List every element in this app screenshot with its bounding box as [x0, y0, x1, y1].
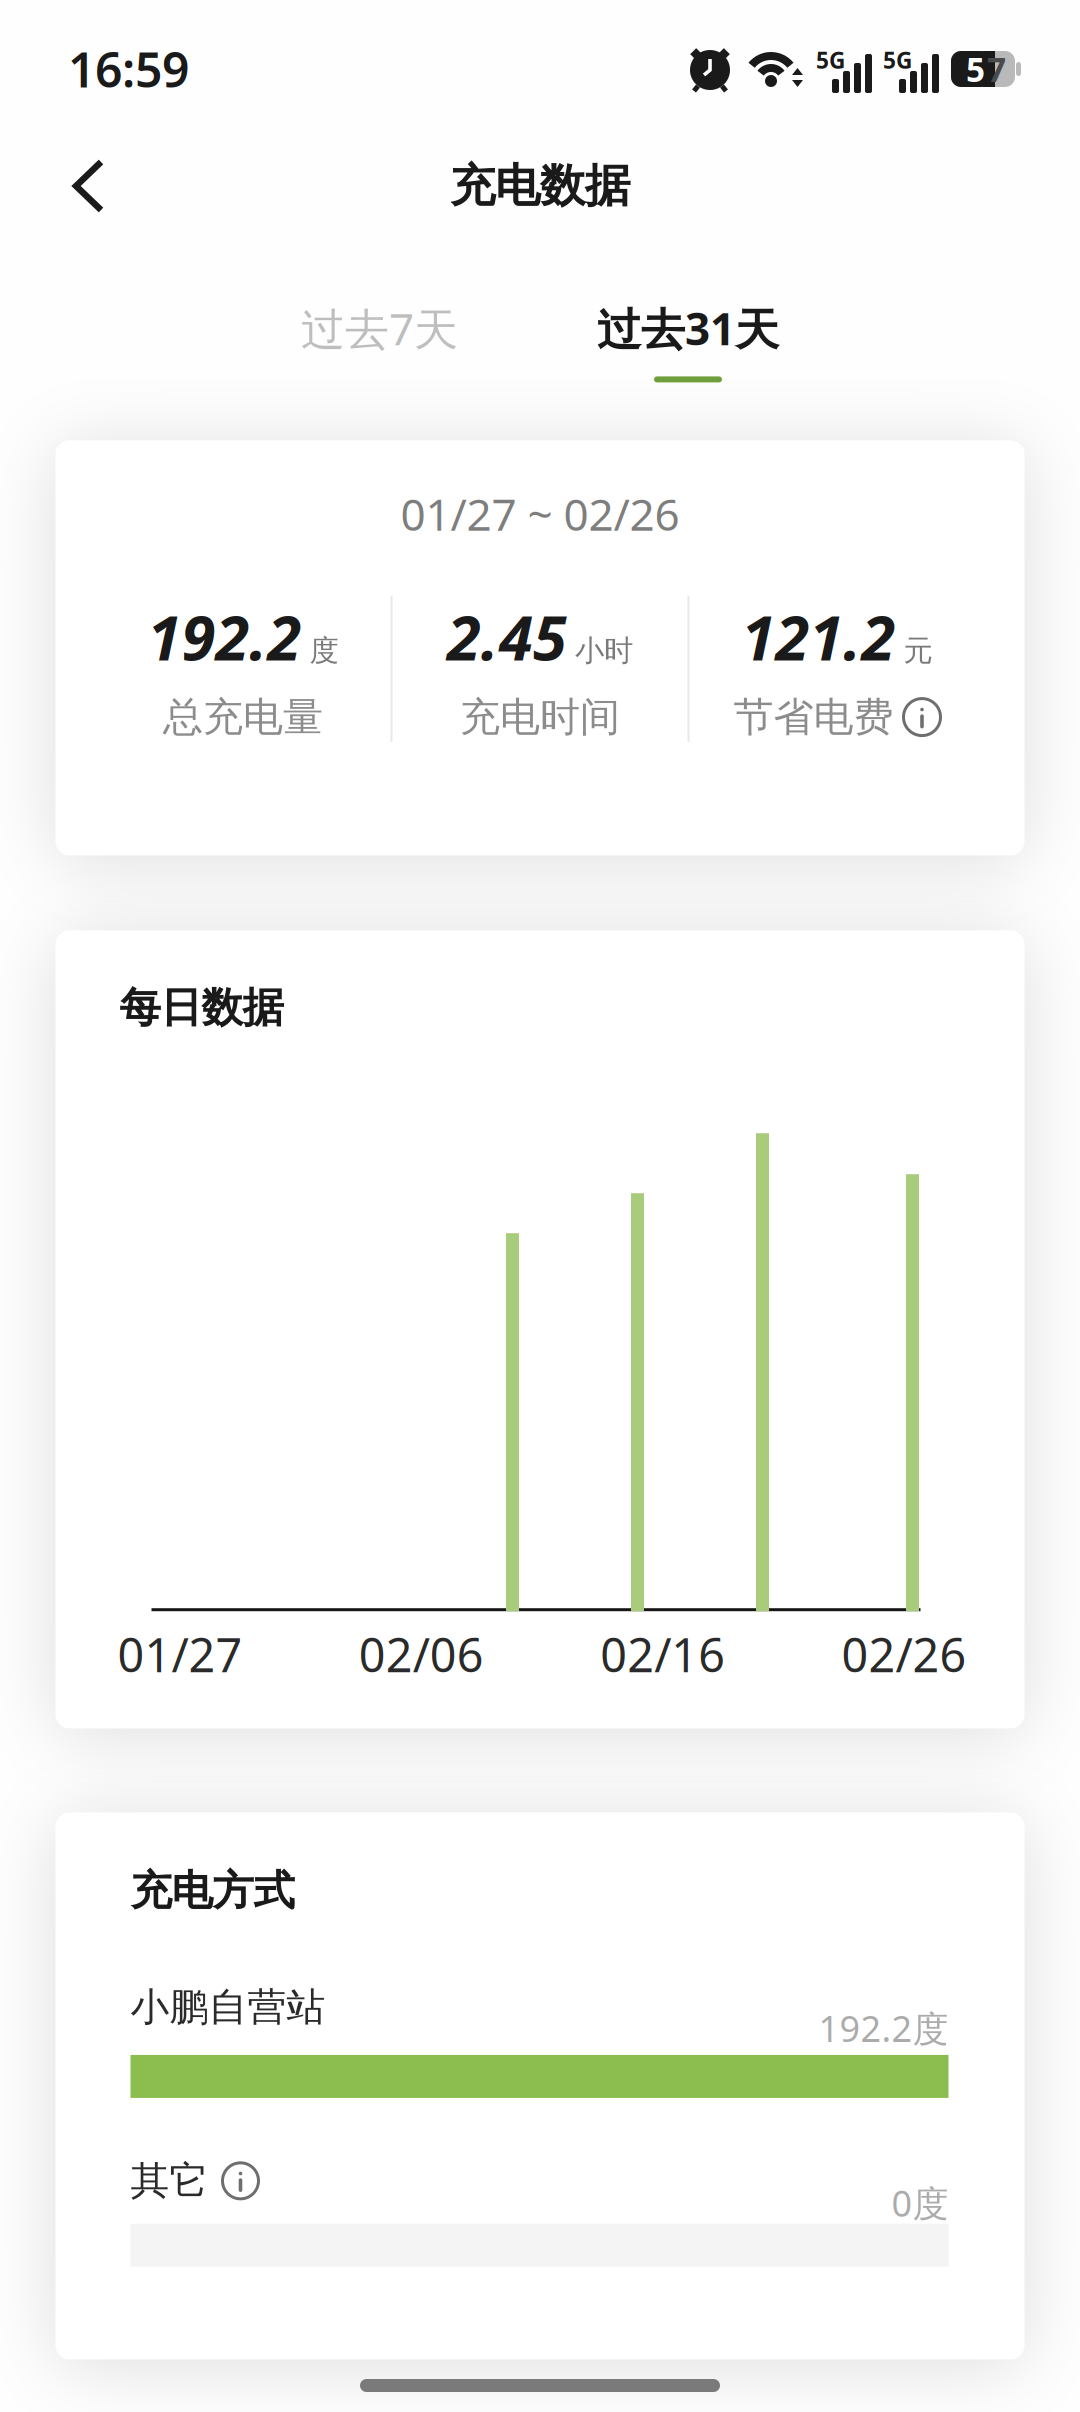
- staticText: 5G: [816, 45, 845, 75]
- button[interactable]: [222, 2163, 258, 2199]
- staticText: 元: [903, 633, 932, 669]
- button[interactable]: 过去7天: [301, 299, 458, 357]
- staticText: 充电数据: [450, 158, 630, 214]
- button[interactable]: 过去31天: [597, 299, 779, 382]
- staticText: 7: [987, 47, 1006, 91]
- staticText: 02/16: [600, 1623, 725, 1685]
- staticText: 小鹏自营站: [130, 1983, 325, 2031]
- staticText: 192.2度: [818, 2004, 948, 2052]
- staticText: 过去31天: [597, 299, 779, 357]
- staticText: 节省电费: [733, 692, 893, 742]
- staticText: 5G: [883, 45, 912, 75]
- staticText: 充电方式: [130, 1865, 294, 1916]
- staticText: 度: [309, 633, 338, 669]
- staticText: 充电时间: [460, 692, 620, 742]
- staticText: 192.2: [147, 596, 301, 677]
- staticText: 总充电量: [163, 692, 323, 742]
- staticText: 每日数据: [119, 982, 283, 1033]
- button[interactable]: [903, 699, 940, 736]
- staticText: 5: [966, 47, 985, 91]
- staticText: 过去7天: [301, 299, 458, 357]
- staticText: 121.2: [741, 596, 895, 677]
- staticText: 01/27: [117, 1623, 242, 1685]
- staticText: 小时: [575, 633, 633, 669]
- staticText: 其它: [130, 2157, 208, 2205]
- staticText: 0度: [891, 2179, 948, 2227]
- staticText: 2.45: [447, 596, 567, 677]
- staticText: 01/27 ~ 02/26: [400, 484, 679, 543]
- staticText: 16:59: [68, 37, 189, 101]
- staticText: 02/06: [359, 1623, 484, 1685]
- staticText: 02/26: [841, 1623, 966, 1685]
- button[interactable]: [0, 151, 106, 221]
